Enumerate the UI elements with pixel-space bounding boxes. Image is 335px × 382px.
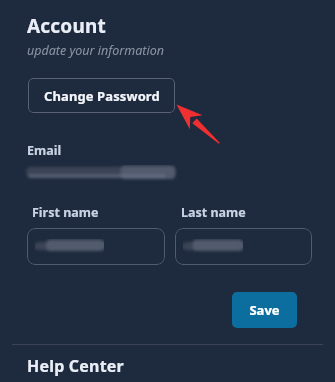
staticText: Email [27,142,62,159]
staticText: Save [249,301,280,319]
button[interactable]: Text field [27,228,165,265]
staticText: Change Password [44,87,160,105]
staticText: Help Center [27,355,124,377]
staticText: update your information [27,42,164,59]
button[interactable]: Text field [175,228,312,265]
staticText: Last name [181,204,246,221]
staticText: Account [27,13,106,39]
button[interactable]: Save [232,292,297,328]
button[interactable]: Change Password [28,78,175,113]
staticText: First name [32,204,99,221]
